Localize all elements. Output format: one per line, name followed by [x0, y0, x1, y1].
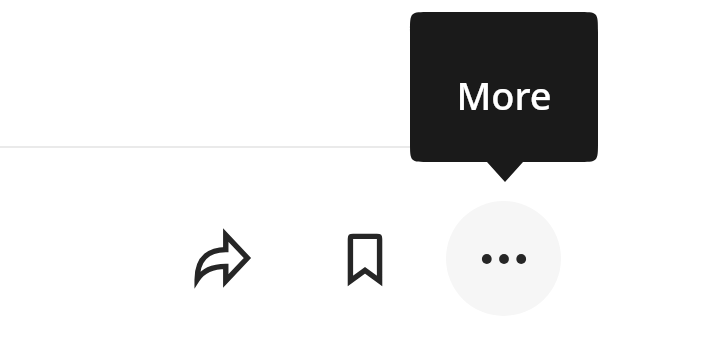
staticText: More — [410, 69, 598, 121]
button[interactable]: More options — [446, 201, 561, 316]
button[interactable]: Bookmark — [325, 218, 405, 298]
button[interactable]: More tooltip — [410, 12, 598, 182]
button[interactable]: Share — [182, 218, 262, 298]
